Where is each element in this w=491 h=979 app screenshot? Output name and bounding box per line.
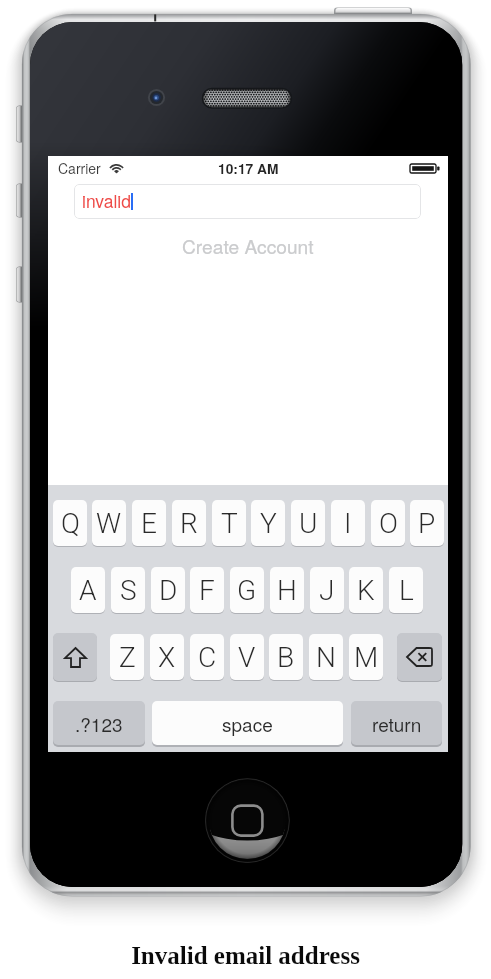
staticText: Create Account [182,232,314,259]
staticText: B [277,641,295,674]
button[interactable]: V [230,634,264,680]
staticText: K [357,574,375,607]
button[interactable]: M [349,634,383,680]
staticText: invalid [82,188,131,213]
staticText: E [141,507,157,540]
staticText: X [158,641,176,674]
button[interactable]: L [389,567,423,613]
staticText: M [354,641,379,674]
staticText: D [159,574,178,607]
staticText: P [418,507,436,540]
button[interactable]: I [331,500,365,546]
staticText: F [199,574,215,607]
staticText: 10:17 AM [218,158,279,178]
staticText: Q [61,507,80,540]
button[interactable]: C [190,634,224,680]
staticText: L [399,574,414,607]
staticText: A [79,574,97,607]
button[interactable]: D [151,567,185,613]
staticText: Carrier [58,158,101,178]
button[interactable]: A [71,567,105,613]
staticText: T [221,507,238,540]
button[interactable]: .?123 [53,701,145,745]
staticText: Y [260,507,277,540]
button[interactable]: X [150,634,184,680]
button[interactable]: Y [251,500,285,546]
staticText: Z [119,641,136,674]
staticText: N [316,641,336,674]
button[interactable]: B [269,634,303,680]
button[interactable]: space [152,701,343,745]
button[interactable]: invalid [74,184,421,219]
button[interactable]: F [190,567,224,613]
button[interactable]: G [230,567,264,613]
button[interactable]: H [270,567,304,613]
button[interactable]: Q [53,500,87,546]
button[interactable]: W [92,500,126,546]
button[interactable]: O [371,500,405,546]
staticText: Invalid email address [131,942,360,970]
button[interactable]: P [410,500,444,546]
button[interactable]: Shift [53,633,97,681]
staticText: V [238,641,256,674]
staticText: return [372,710,422,737]
button[interactable]: J [310,567,344,613]
staticText: W [96,507,122,540]
staticText: C [198,641,217,674]
button[interactable]: U [291,500,325,546]
staticText: space [222,710,273,737]
staticText: R [180,507,198,540]
staticText: G [237,574,257,607]
button[interactable]: K [349,567,383,613]
button[interactable]: E [132,500,166,546]
button[interactable]: N [309,634,343,680]
button[interactable]: Backspace [397,633,442,681]
button[interactable]: T [212,500,246,546]
button[interactable]: S [111,567,145,613]
button[interactable]: return [351,701,442,745]
staticText: I [344,507,352,540]
button[interactable]: R [172,500,206,546]
staticText: .?123 [75,710,123,737]
staticText: J [319,574,335,607]
staticText: O [379,507,398,540]
staticText: S [120,574,137,607]
button[interactable]: Z [110,634,144,680]
staticText: U [299,507,318,540]
staticText: H [277,574,297,607]
